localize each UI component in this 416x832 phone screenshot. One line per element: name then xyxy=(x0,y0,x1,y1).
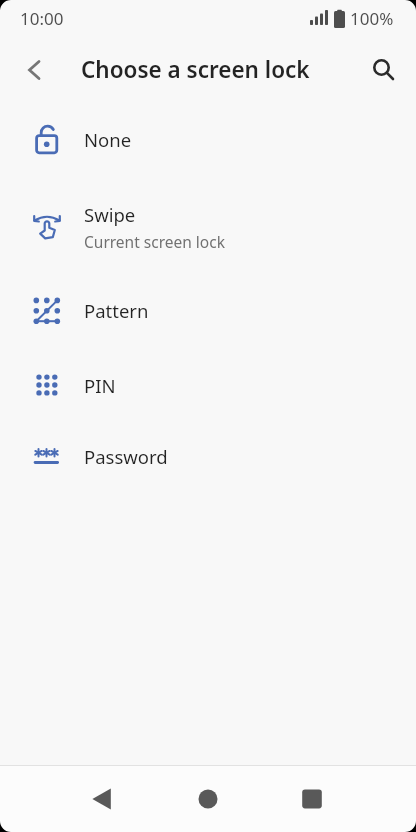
button[interactable]: Password xyxy=(0,420,416,493)
button[interactable] xyxy=(78,775,126,823)
staticText: 100% xyxy=(350,7,394,30)
button[interactable] xyxy=(288,775,336,823)
staticText: PIN xyxy=(84,373,116,398)
button[interactable]: None xyxy=(0,103,416,175)
button[interactable]: PIN xyxy=(0,348,416,422)
button[interactable] xyxy=(362,48,406,92)
button[interactable]: Pattern xyxy=(0,274,416,347)
staticText: Password xyxy=(84,444,168,469)
staticText: Swipe xyxy=(84,202,136,227)
button[interactable] xyxy=(13,48,57,92)
button[interactable] xyxy=(184,775,232,823)
staticText: None xyxy=(84,127,132,152)
staticText: 10:00 xyxy=(20,7,64,30)
button[interactable]: Swipe xyxy=(0,175,416,279)
staticText: Current screen lock xyxy=(84,231,225,252)
staticText: Choose a screen lock xyxy=(81,54,310,85)
staticText: Pattern xyxy=(84,298,149,323)
